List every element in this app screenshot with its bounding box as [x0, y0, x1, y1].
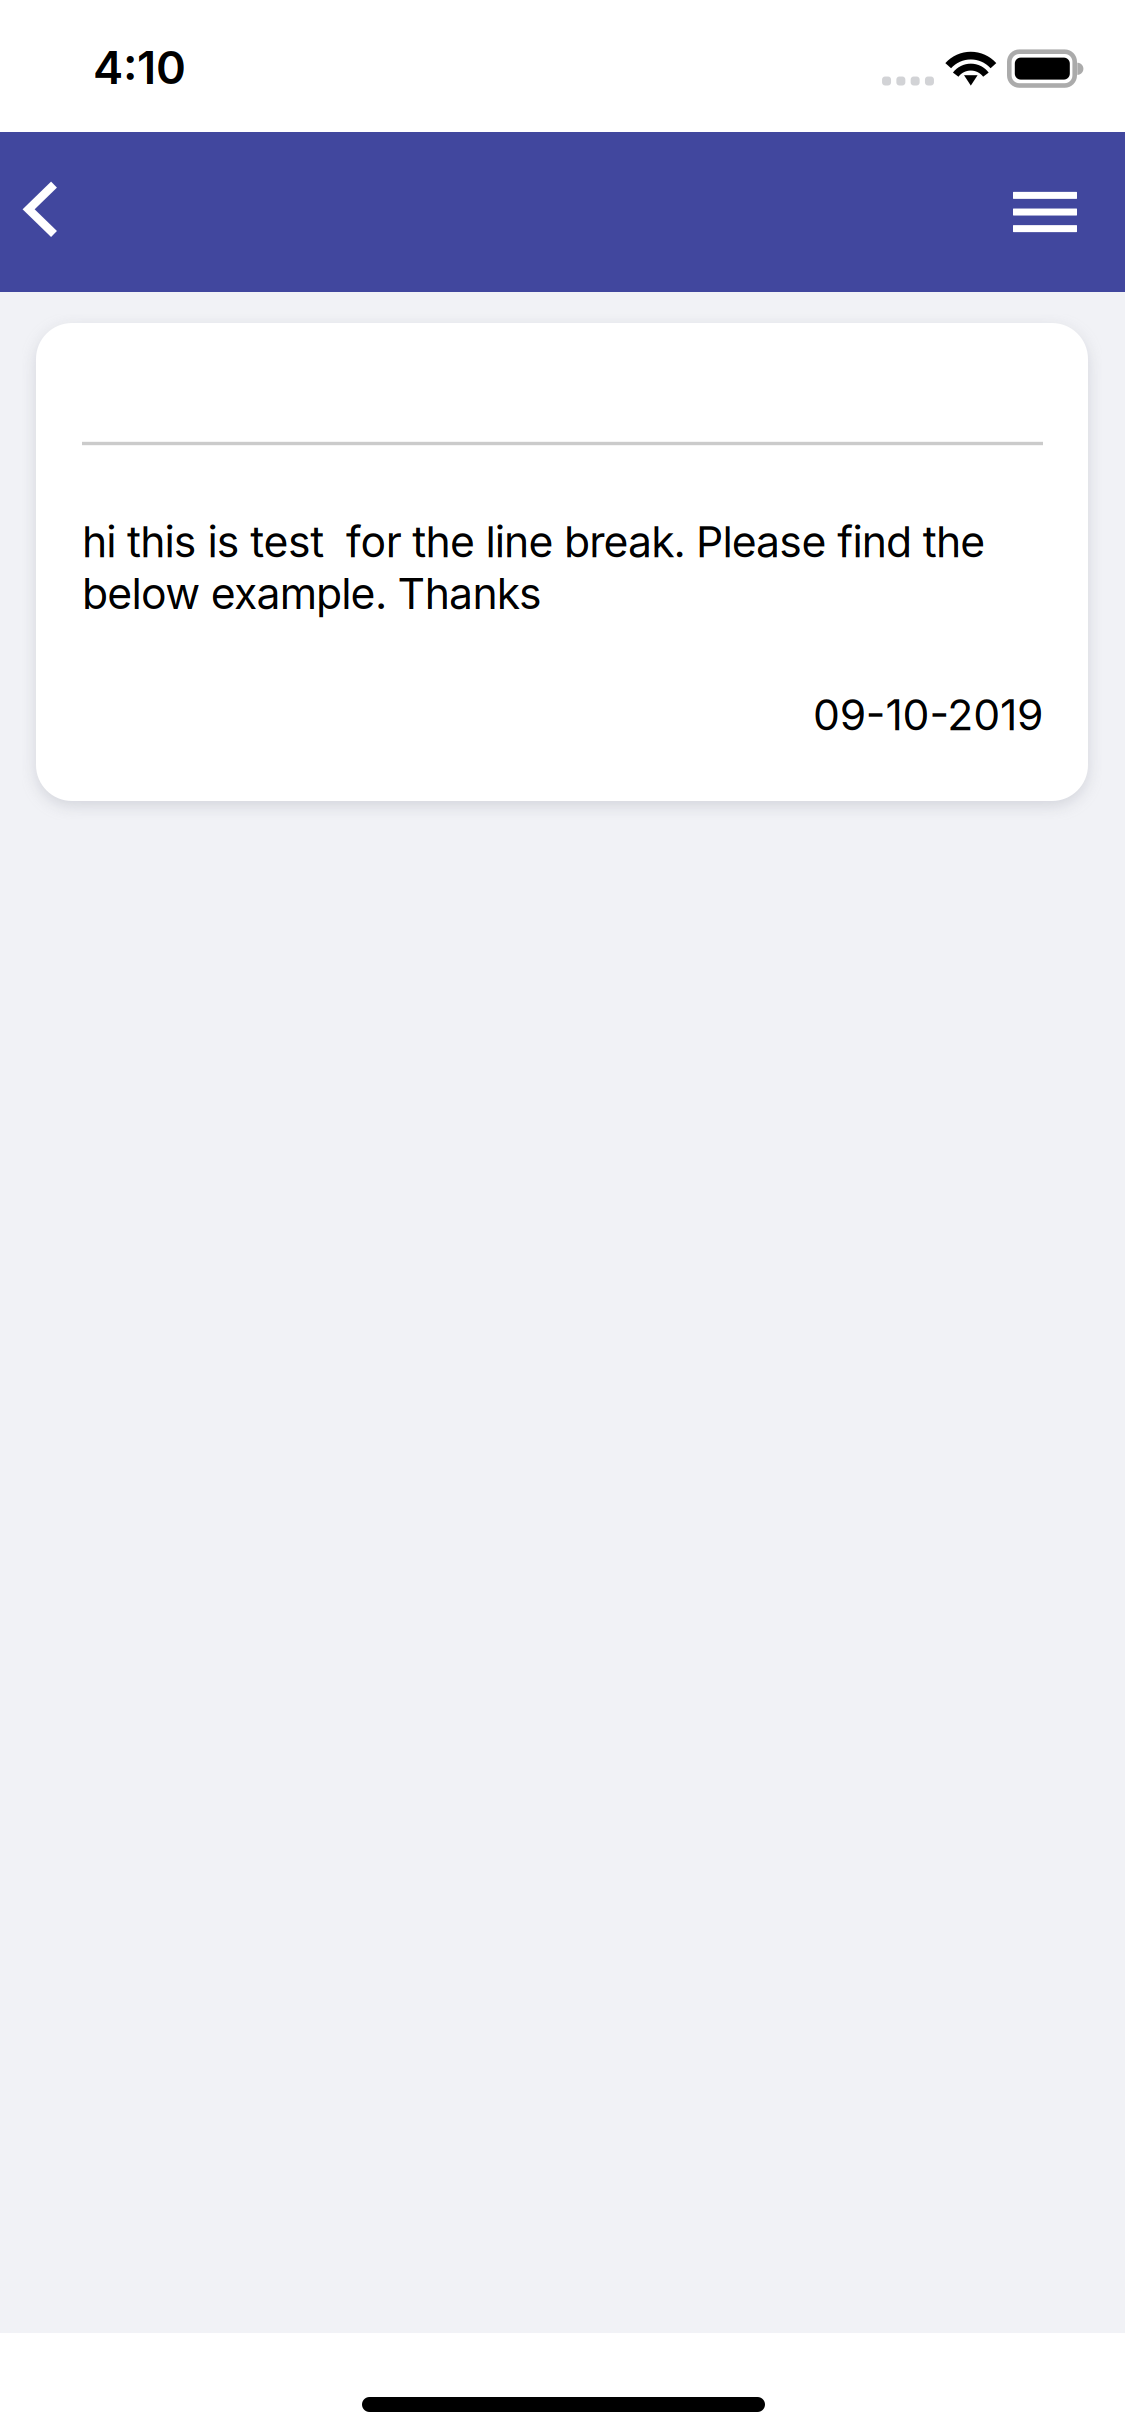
staticText: hi this is test for the line break. Plea…	[82, 516, 985, 619]
staticText: 4:10	[93, 40, 186, 95]
button[interactable]: Menu	[990, 157, 1100, 267]
staticText: 09-10-2019	[813, 689, 1043, 741]
button[interactable]: Back	[0, 156, 100, 266]
